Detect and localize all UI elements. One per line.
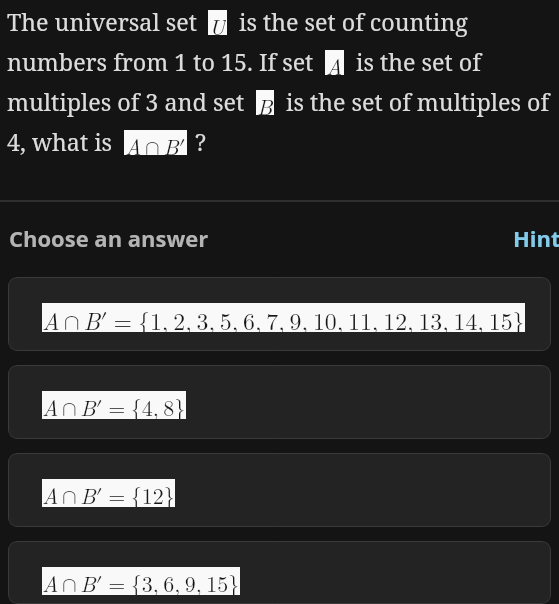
button[interactable]: Hint xyxy=(513,223,559,249)
button[interactable]: A ∩ B′ = {12} xyxy=(8,453,551,527)
staticText: A ∩ B′ xyxy=(125,130,186,155)
staticText: A ∩ B′ = {12} xyxy=(42,479,175,507)
staticText: is the set of xyxy=(356,46,481,78)
button[interactable]: A ∩ B′ = {3, 6, 9, 15} xyxy=(8,541,551,604)
staticText: Hint xyxy=(513,223,559,249)
staticText: is the set of multiples of xyxy=(286,86,550,118)
staticText: ? xyxy=(195,126,207,158)
staticText: 4, what is xyxy=(7,126,113,158)
staticText: A ∩ B′ = {4, 8} xyxy=(42,391,186,419)
staticText: A xyxy=(326,50,343,75)
button[interactable]: A ∩ B′ = {4, 8} xyxy=(8,365,551,439)
staticText: is the set of counting xyxy=(239,6,468,38)
staticText: The universal set xyxy=(7,6,197,38)
staticText: B xyxy=(257,90,273,115)
staticText: numbers from 1 to 15. If set xyxy=(7,46,314,78)
staticText: A ∩ B′ = {3, 6, 9, 15} xyxy=(42,567,240,595)
staticText: Choose an answer xyxy=(9,223,209,249)
staticText: multiples of 3 and set xyxy=(7,86,245,118)
button[interactable]: A ∩ B′ = {1, 2, 3, 5, 6, 7, 9, 10, 11, 1… xyxy=(8,277,551,351)
staticText: U xyxy=(209,10,226,35)
staticText: A ∩ B′ = {1, 2, 3, 5, 6, 7, 9, 10, 11, 1… xyxy=(42,303,525,332)
